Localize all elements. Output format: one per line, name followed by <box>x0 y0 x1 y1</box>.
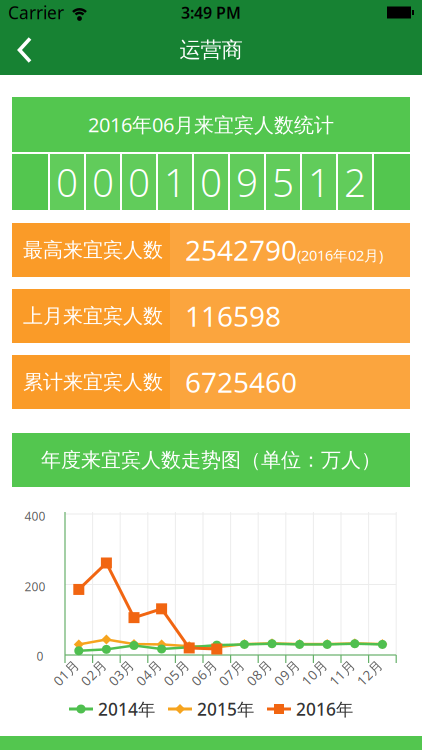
staticText: 累计来宜宾人数 <box>23 370 163 394</box>
staticText: 12月 <box>355 664 384 682</box>
staticText: 04月 <box>134 664 163 682</box>
staticText: 116598 <box>185 297 281 335</box>
staticText: 3:49 PM <box>181 2 241 23</box>
staticText: 0 <box>128 156 150 208</box>
staticText: 09月 <box>272 664 301 682</box>
staticText: 上月来宜宾人数 <box>23 304 163 328</box>
staticText: 06月 <box>189 664 218 682</box>
staticText: Carrier <box>8 1 64 24</box>
staticText: 2015年 <box>197 697 254 720</box>
staticText: 05月 <box>162 664 191 682</box>
staticText: 01月 <box>51 664 80 682</box>
staticText: 2014年 <box>98 697 155 720</box>
staticText: 0 <box>92 156 114 208</box>
staticText: 02月 <box>79 664 108 682</box>
staticText: 2016年06月来宜宾人数统计 <box>88 111 334 138</box>
staticText: 1 <box>308 156 330 208</box>
staticText: 9 <box>236 156 258 208</box>
staticText: (2016年02月) <box>297 245 383 265</box>
staticText: 07月 <box>217 664 246 682</box>
staticText: 03月 <box>106 664 135 682</box>
staticText: 1 <box>164 156 186 208</box>
staticText: 运营商 <box>179 37 242 63</box>
staticText: 08月 <box>244 664 273 682</box>
staticText: 5 <box>272 156 294 208</box>
staticText: 2 <box>344 156 366 208</box>
staticText: 年度来宜宾人数走势图（单位：万人） <box>41 448 381 472</box>
staticText: 200 <box>24 578 45 594</box>
staticText: 6725460 <box>185 363 297 401</box>
staticText: 2542790 <box>185 231 297 269</box>
staticText: 10月 <box>300 664 329 682</box>
staticText: 0 <box>36 648 43 664</box>
staticText: 0 <box>56 156 78 208</box>
button[interactable] <box>0 25 44 75</box>
staticText: 2016年 <box>296 697 353 720</box>
staticText: 400 <box>24 508 45 524</box>
staticText: 11月 <box>327 664 356 682</box>
staticText: 最高来宜宾人数 <box>23 238 163 262</box>
staticText: 0 <box>200 156 222 208</box>
